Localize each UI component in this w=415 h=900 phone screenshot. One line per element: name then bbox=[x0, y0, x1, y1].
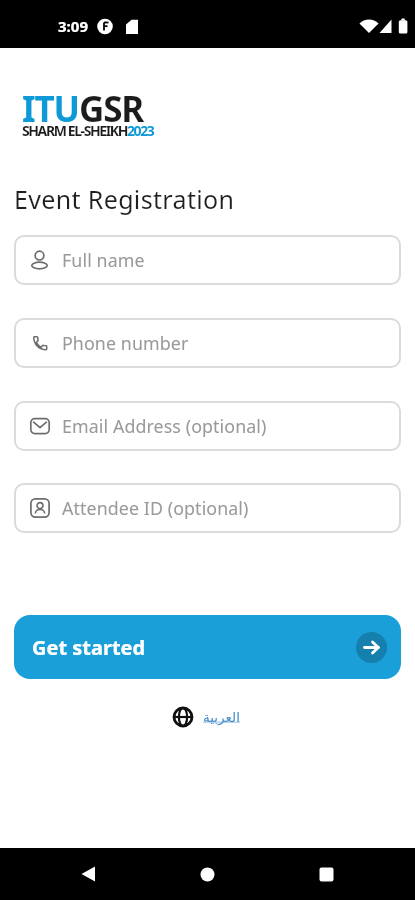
staticText: SHARM EL-SHEIKH bbox=[22, 121, 127, 140]
staticText: 3:09 bbox=[58, 16, 88, 36]
staticText: Attendee ID (optional) bbox=[62, 496, 249, 520]
button[interactable] bbox=[200, 867, 215, 882]
staticText: ITU bbox=[22, 85, 79, 133]
staticText: Full name bbox=[62, 248, 145, 272]
staticText: Phone number bbox=[62, 331, 189, 355]
staticText: Event Registration bbox=[14, 182, 235, 216]
button[interactable] bbox=[80, 866, 96, 882]
button[interactable]: Email Address (optional) bbox=[14, 401, 401, 451]
button[interactable] bbox=[319, 867, 334, 882]
staticText: 2023 bbox=[127, 121, 154, 140]
button[interactable]: Full name bbox=[14, 235, 401, 285]
staticText: Get started bbox=[32, 634, 146, 661]
staticText: العربية bbox=[203, 709, 240, 725]
button[interactable]: Get started bbox=[14, 615, 401, 679]
button[interactable]: Attendee ID (optional) bbox=[14, 483, 401, 533]
button[interactable]: العربية bbox=[172, 706, 240, 728]
button[interactable]: Phone number bbox=[14, 318, 401, 368]
staticText: Email Address (optional) bbox=[62, 414, 267, 438]
staticText: GSR bbox=[79, 85, 143, 133]
